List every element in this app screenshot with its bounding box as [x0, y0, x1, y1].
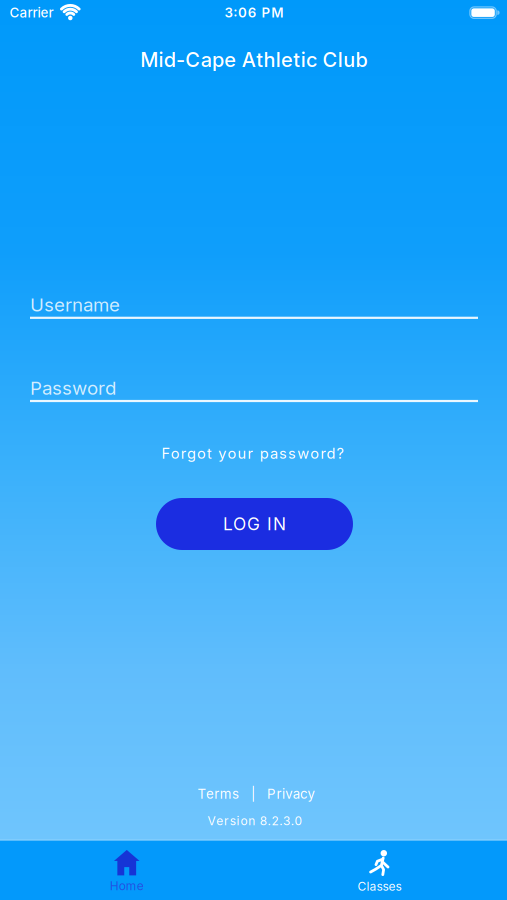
staticText: Version 8.2.3.0 — [207, 814, 303, 828]
staticText: Mid-Cape Athletic Club — [140, 48, 367, 72]
staticText: Home — [110, 879, 144, 893]
button[interactable]: LOG IN — [156, 498, 353, 550]
staticText: 3:06 PM — [224, 5, 283, 20]
staticText: Classes — [357, 879, 401, 894]
button[interactable]: Home — [0, 841, 253, 900]
staticText: Carrier — [9, 5, 53, 20]
staticText: Terms — [197, 786, 239, 802]
button[interactable]: Privacy — [267, 786, 314, 802]
button[interactable]: Password — [30, 377, 478, 402]
button[interactable]: Terms — [197, 786, 239, 802]
staticText: Privacy — [267, 786, 314, 802]
staticText: Username — [30, 294, 120, 316]
button[interactable]: Forgot your password? — [162, 445, 344, 462]
staticText: | — [251, 786, 255, 802]
staticText: Password — [30, 377, 116, 399]
button[interactable]: Username — [30, 294, 478, 319]
staticText: Forgot your password? — [162, 445, 344, 462]
staticText: LOG IN — [223, 514, 286, 534]
button[interactable]: Classes — [253, 841, 506, 900]
